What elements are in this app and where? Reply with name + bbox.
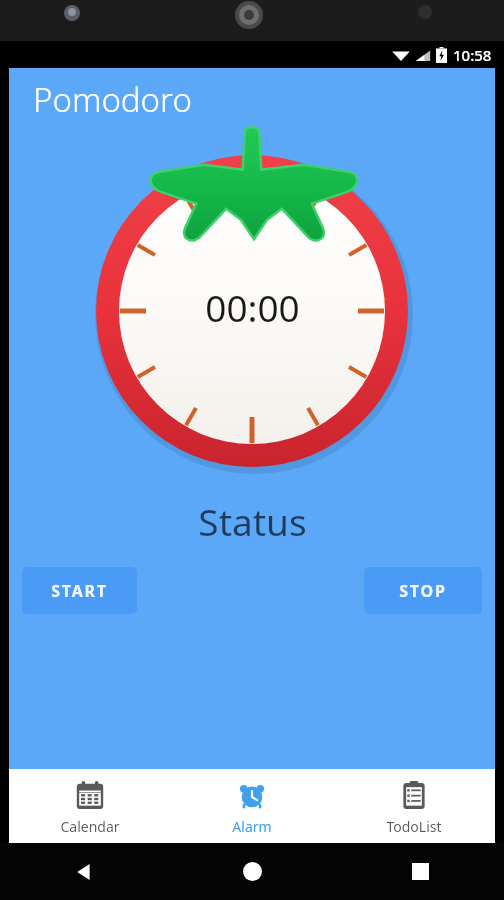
button[interactable]: Alarm — [171, 769, 333, 843]
button[interactable]: TodoList — [333, 769, 495, 843]
button[interactable]: Back — [0, 843, 168, 900]
staticText: 10:58 — [453, 45, 492, 65]
button[interactable]: STOP — [364, 567, 482, 614]
staticText: Status — [198, 496, 307, 546]
button[interactable]: START — [22, 567, 137, 614]
staticText: TodoList — [386, 817, 442, 836]
staticText: START — [51, 580, 108, 602]
button[interactable]: Home — [168, 843, 336, 900]
staticText: Calendar — [60, 817, 120, 836]
button[interactable]: Recent apps — [336, 843, 504, 900]
staticText: Alarm — [232, 817, 272, 836]
staticText: Pomodoro — [33, 77, 192, 122]
button[interactable]: Calendar — [9, 769, 171, 843]
staticText: 00:00 — [205, 282, 300, 332]
staticText: STOP — [399, 580, 447, 602]
